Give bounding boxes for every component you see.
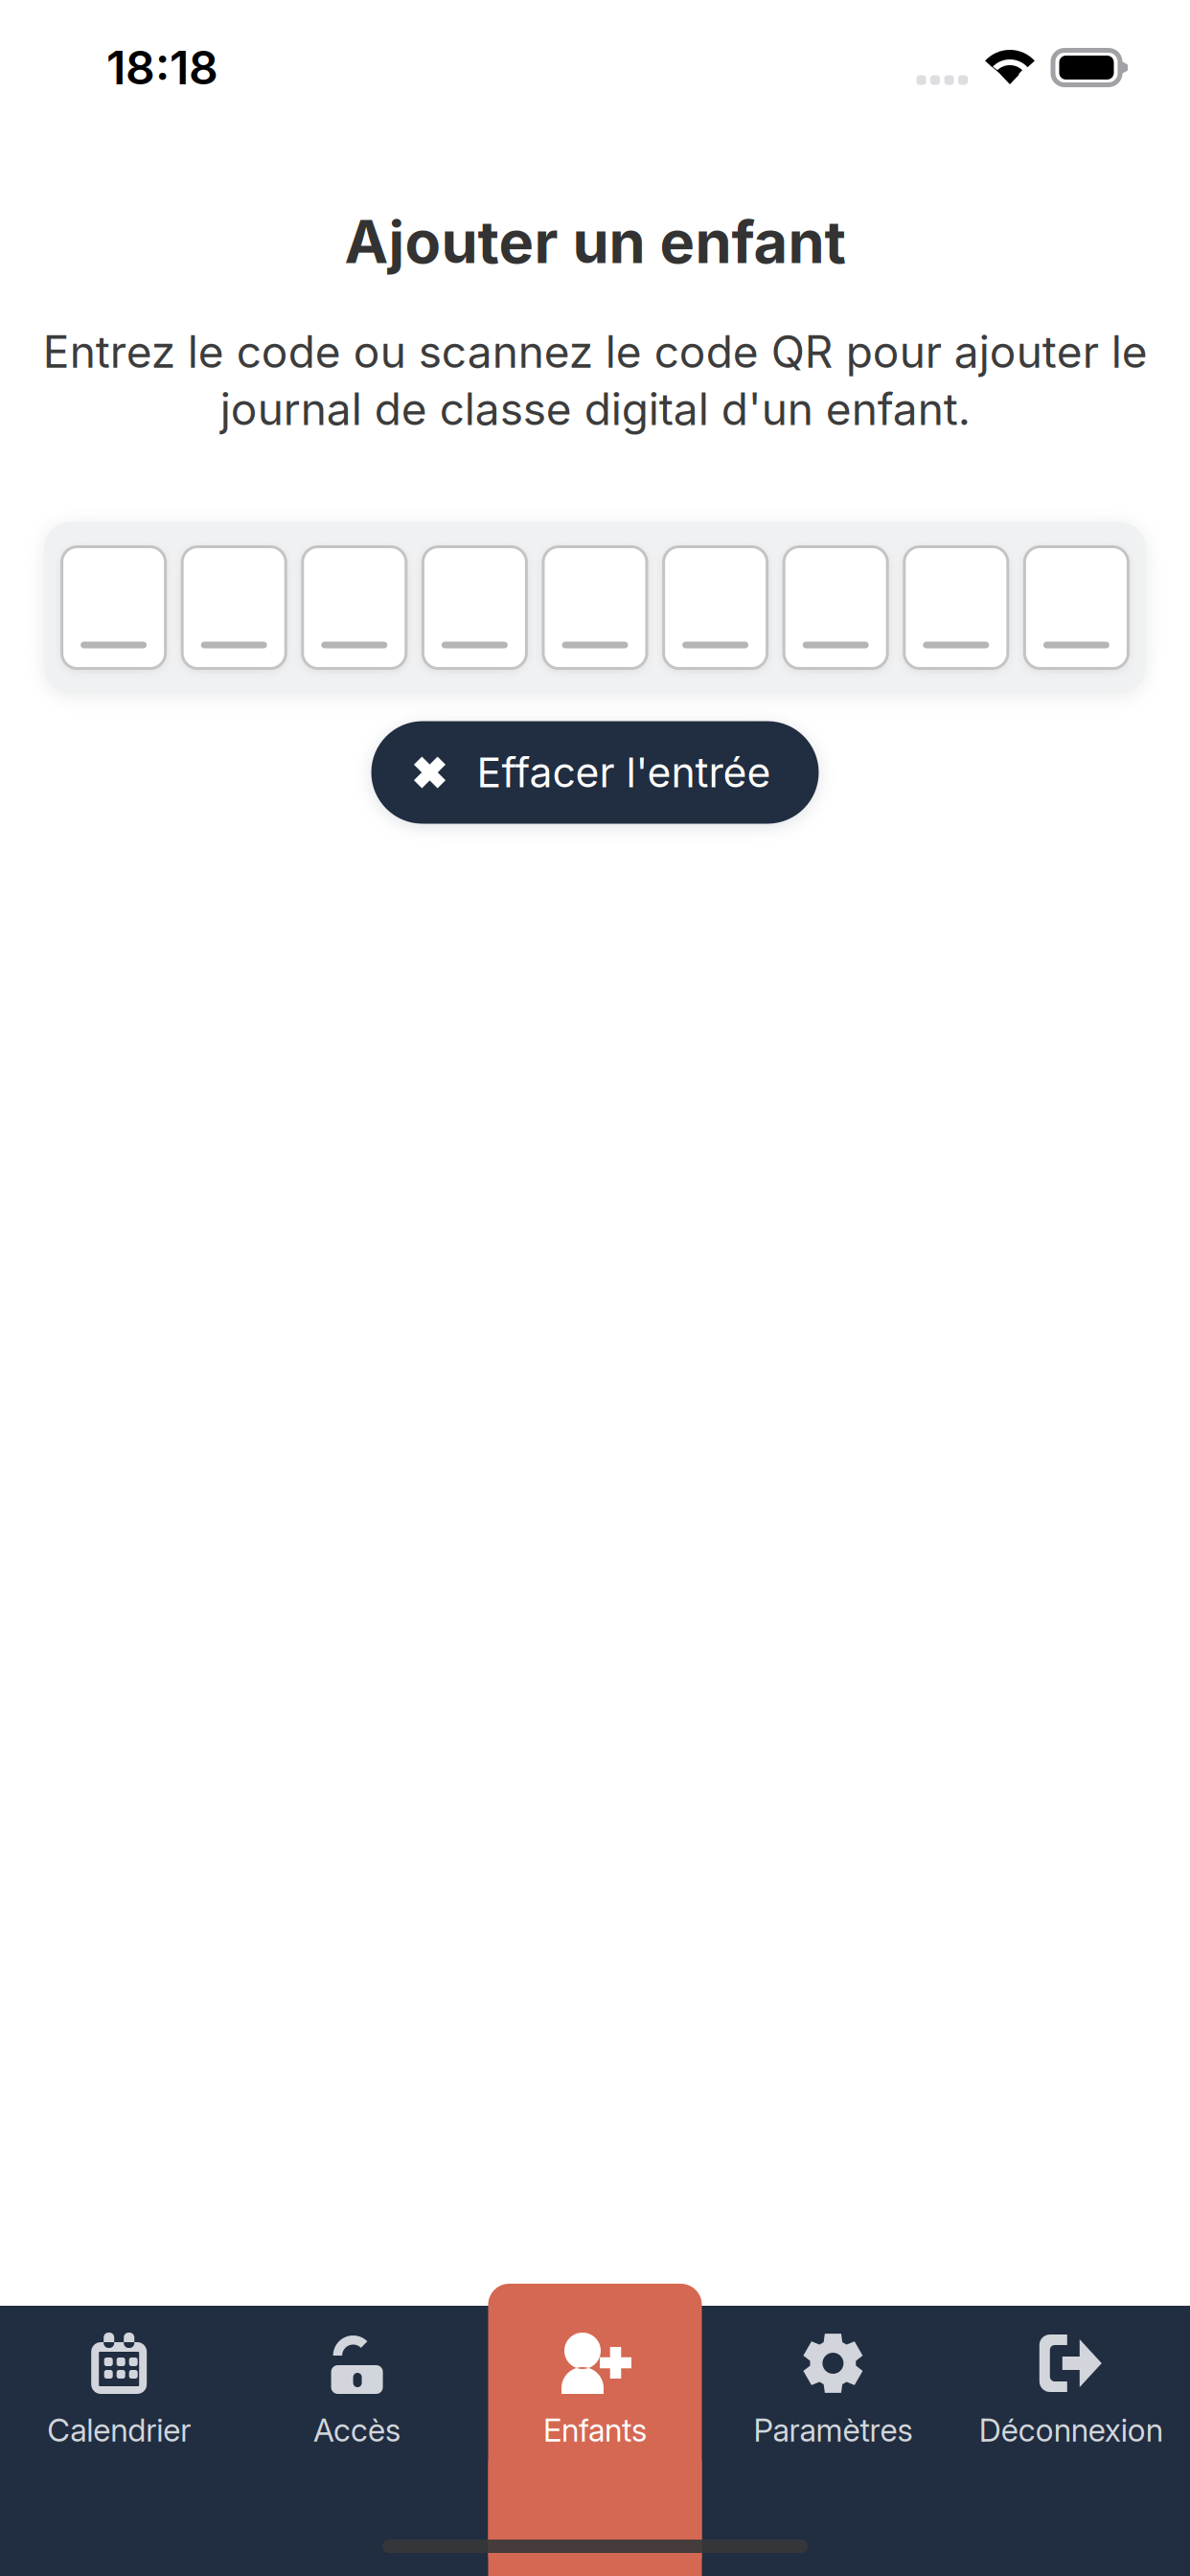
- button[interactable]: Calendrier: [0, 2306, 238, 2576]
- staticText: Effacer l'entrée: [477, 748, 771, 797]
- button[interactable]: Accès: [238, 2306, 476, 2576]
- staticText: Ajouter un enfant: [344, 206, 846, 277]
- staticText: Paramètres: [753, 2411, 913, 2449]
- staticText: Entrez le code ou scannez le code QR pou…: [43, 325, 1147, 436]
- staticText: Déconnexion: [979, 2411, 1163, 2449]
- button[interactable]: Effacer l'entrée: [371, 721, 819, 824]
- staticText: Enfants: [543, 2411, 647, 2449]
- button[interactable]: Paramètres: [714, 2306, 952, 2576]
- staticText: Accès: [313, 2411, 401, 2449]
- staticText: 18:18: [106, 40, 218, 95]
- staticText: Calendrier: [47, 2411, 191, 2449]
- button[interactable]: Enfants: [476, 2306, 714, 2576]
- button[interactable]: Déconnexion: [952, 2306, 1190, 2576]
